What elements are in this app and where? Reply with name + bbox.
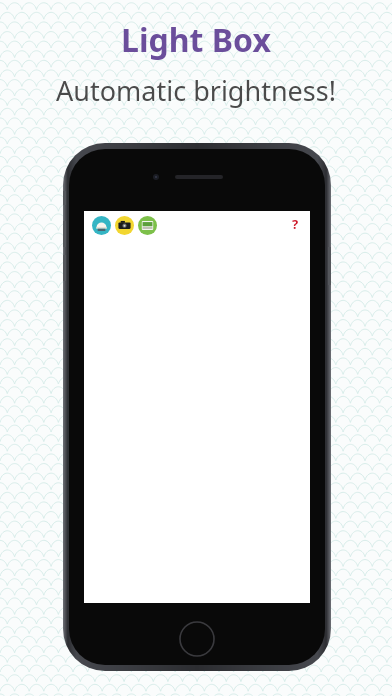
staticText: ? (292, 215, 299, 233)
staticText: Automatic brightness! (0, 72, 392, 109)
button[interactable]: Camera (115, 216, 134, 235)
staticText: Light Box (0, 18, 392, 62)
button[interactable]: Brightness (92, 216, 111, 235)
button[interactable]: Gallery (138, 216, 157, 235)
button[interactable]: Help (284, 213, 306, 235)
